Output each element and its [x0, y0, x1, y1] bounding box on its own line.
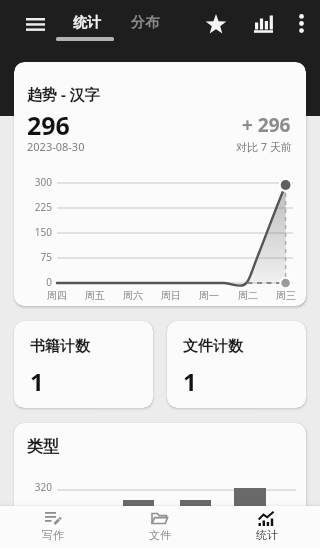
staticText: 300: [14, 175, 52, 189]
staticText: 2023-08-30: [27, 139, 85, 154]
staticText: 320: [14, 480, 52, 494]
button[interactable]: [22, 11, 48, 37]
button[interactable]: [202, 10, 230, 38]
button[interactable]: 分布: [116, 0, 174, 48]
staticText: 类型: [27, 437, 59, 457]
staticText: 0: [14, 275, 52, 289]
staticText: 统计: [73, 14, 101, 32]
staticText: 周六: [113, 289, 153, 302]
button[interactable]: [249, 10, 277, 38]
staticText: 书籍计数: [30, 337, 90, 356]
staticText: 趋势 - 汉字: [27, 84, 100, 104]
staticText: 225: [14, 200, 52, 214]
staticText: 写作: [42, 528, 64, 542]
staticText: 对比 7 天前: [236, 139, 293, 154]
staticText: + 296: [242, 112, 291, 138]
staticText: 周三: [266, 289, 306, 302]
staticText: 周四: [37, 289, 77, 302]
button[interactable]: 写作: [0, 506, 106, 548]
button[interactable]: 类型: [14, 423, 306, 548]
staticText: 75: [14, 250, 52, 264]
staticText: 统计: [256, 528, 278, 542]
button[interactable]: 统计: [58, 0, 116, 48]
staticText: 1: [183, 365, 197, 398]
staticText: 文件: [149, 528, 171, 542]
staticText: 296: [27, 108, 70, 142]
button[interactable]: 书籍计数: [14, 321, 153, 408]
button[interactable]: 文件计数: [167, 321, 306, 408]
staticText: 周二: [228, 289, 268, 302]
staticText: 周一: [189, 289, 229, 302]
staticText: 文件计数: [183, 337, 243, 356]
button[interactable]: 趋势 - 汉字: [14, 62, 306, 306]
button[interactable]: 统计: [213, 506, 320, 548]
staticText: 1: [30, 365, 44, 398]
staticText: 分布: [131, 14, 159, 32]
button[interactable]: [288, 10, 314, 36]
button[interactable]: 文件: [106, 506, 213, 548]
staticText: 150: [14, 225, 52, 239]
staticText: 周日: [151, 289, 191, 302]
staticText: 周五: [75, 289, 115, 302]
